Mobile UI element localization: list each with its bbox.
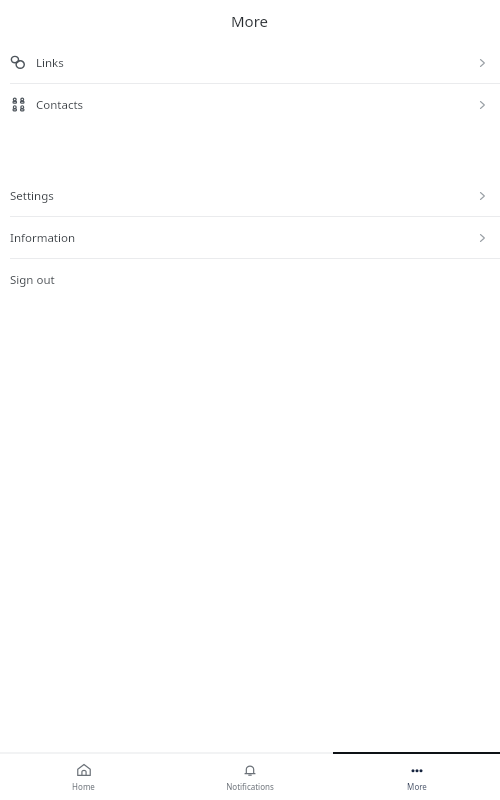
staticText: More [407,781,427,792]
staticText: Notifications [226,781,274,792]
button[interactable]: Information [0,217,500,258]
staticText: Links [36,55,64,71]
staticText: Settings [10,188,54,204]
staticText: Sign out [10,272,55,288]
button[interactable]: Sign out [0,259,500,300]
button[interactable]: More [333,754,500,800]
staticText: Information [10,230,76,246]
button[interactable]: Links [0,42,500,83]
button[interactable]: Home [0,754,166,800]
staticText: Home [72,781,95,792]
button[interactable]: Contacts [0,84,500,125]
button[interactable]: Settings [0,175,500,216]
button[interactable]: Notifications [166,754,333,800]
staticText: Contacts [36,97,84,113]
staticText: More [231,11,269,31]
